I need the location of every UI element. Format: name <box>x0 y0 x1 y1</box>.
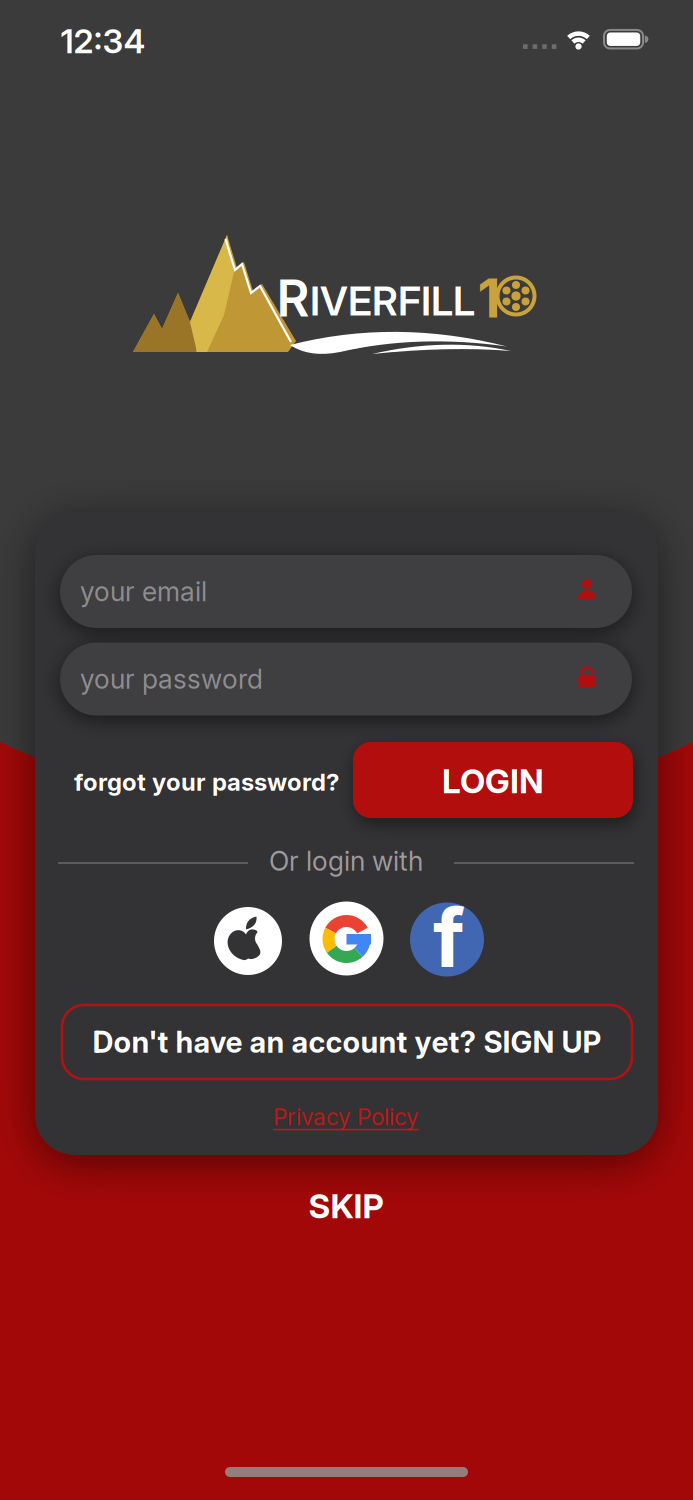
staticText: R <box>276 268 309 328</box>
staticText: 12:34 <box>60 21 145 61</box>
staticText: LOGIN <box>442 761 544 801</box>
staticText: 1 <box>477 266 500 329</box>
staticText: your email <box>80 576 207 607</box>
staticText: your password <box>80 663 263 695</box>
staticText: Don't have an account yet? SIGN UP <box>92 1025 601 1059</box>
staticText: Or login with <box>269 845 423 877</box>
staticText: Privacy Policy <box>273 1104 419 1130</box>
staticText: IVERFILL <box>310 277 475 325</box>
staticText: f <box>433 891 465 985</box>
staticText: forgot your password? <box>74 768 339 796</box>
staticText: SKIP <box>308 1186 383 1226</box>
